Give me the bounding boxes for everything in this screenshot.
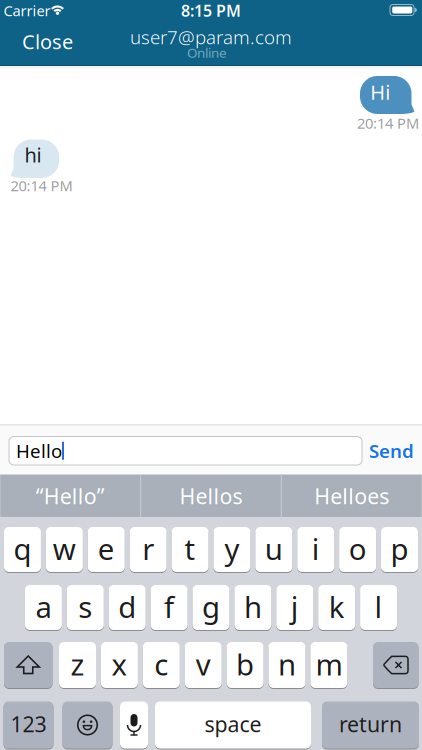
staticText: 20:14 PM <box>357 113 419 133</box>
staticText: t <box>184 529 195 568</box>
staticText: j <box>291 587 299 626</box>
button[interactable]: h <box>234 585 271 630</box>
staticText: user7@param.com <box>130 25 292 49</box>
button[interactable]: “Hello” <box>0 474 140 517</box>
staticText: return <box>339 710 402 738</box>
button[interactable]: s <box>67 585 104 630</box>
button[interactable]: i <box>297 527 334 572</box>
button[interactable]: return <box>322 701 419 748</box>
staticText: v <box>196 644 211 683</box>
staticText: q <box>13 529 31 568</box>
staticText: hi <box>24 141 41 168</box>
staticText: Hello <box>16 438 62 463</box>
button[interactable]: q <box>4 527 41 572</box>
staticText: space <box>204 710 261 738</box>
staticText: h <box>244 587 262 626</box>
button[interactable]: u <box>255 527 292 572</box>
staticText: Hi <box>370 79 390 105</box>
staticText: z <box>70 644 84 683</box>
button[interactable]: f <box>151 585 188 630</box>
button[interactable]: Send <box>369 436 414 465</box>
button[interactable]: w <box>46 527 83 572</box>
button[interactable]: e <box>88 527 125 572</box>
staticText: f <box>164 587 174 626</box>
staticText: 8:15 PM <box>181 0 241 21</box>
staticText: Carrier <box>3 1 50 20</box>
button[interactable]: l <box>360 585 397 630</box>
staticText: p <box>390 529 408 568</box>
staticText: a <box>35 587 51 626</box>
button[interactable]: g <box>192 585 229 630</box>
staticText: c <box>154 644 168 683</box>
staticText: m <box>315 644 342 683</box>
button[interactable]: 123 <box>3 701 53 748</box>
button[interactable]: z <box>59 642 96 688</box>
staticText: o <box>349 529 367 568</box>
staticText: Online <box>187 44 227 61</box>
button[interactable]: p <box>381 527 418 572</box>
button[interactable]: Emoji <box>62 701 112 748</box>
staticText: u <box>265 529 283 568</box>
staticText: Helloes <box>314 482 389 510</box>
staticText: d <box>118 587 136 626</box>
staticText: s <box>78 587 92 626</box>
button[interactable]: x <box>101 642 138 688</box>
staticText: x <box>111 644 127 683</box>
staticText: e <box>98 529 115 568</box>
button[interactable]: t <box>171 527 208 572</box>
button[interactable]: y <box>213 527 250 572</box>
staticText: 123 <box>10 710 46 738</box>
staticText: n <box>278 644 296 683</box>
button[interactable]: k <box>318 585 355 630</box>
button[interactable]: j <box>276 585 313 630</box>
staticText: l <box>375 587 383 626</box>
staticText: y <box>224 529 239 568</box>
staticText: g <box>202 587 220 626</box>
button[interactable]: Hellos <box>141 474 281 517</box>
button[interactable]: Shift <box>4 642 52 688</box>
staticText: “Hello” <box>36 482 105 510</box>
button[interactable]: Delete <box>373 642 418 688</box>
button[interactable]: Dictate <box>120 701 148 748</box>
button[interactable]: d <box>109 585 146 630</box>
button[interactable]: n <box>268 642 305 688</box>
button[interactable]: r <box>130 527 167 572</box>
staticText: Hellos <box>179 482 242 510</box>
button[interactable]: c <box>143 642 180 688</box>
button[interactable]: a <box>25 585 62 630</box>
staticText: i <box>312 529 320 568</box>
button[interactable]: Message text field <box>9 436 362 465</box>
button[interactable]: b <box>227 642 264 688</box>
staticText: b <box>236 644 254 683</box>
staticText: w <box>53 529 76 568</box>
button[interactable]: m <box>310 642 347 688</box>
button[interactable]: Helloes <box>282 474 422 517</box>
staticText: Send <box>369 438 414 463</box>
staticText: k <box>329 587 345 626</box>
button[interactable]: Close <box>2 20 83 63</box>
button[interactable]: o <box>339 527 376 572</box>
button[interactable]: v <box>185 642 222 688</box>
staticText: Close <box>22 28 73 55</box>
staticText: r <box>142 529 154 568</box>
button[interactable]: space <box>155 701 311 748</box>
staticText: 20:14 PM <box>11 176 73 195</box>
